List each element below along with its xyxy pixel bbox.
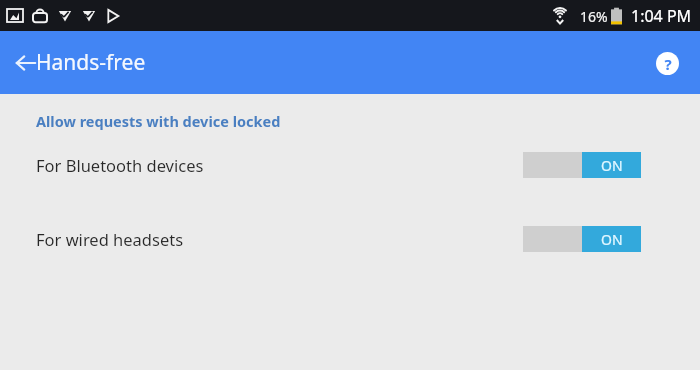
- staticText: ON: [601, 230, 623, 249]
- staticText: Hands-free: [36, 48, 146, 77]
- button[interactable]: For wired headsets: [0, 226, 700, 252]
- staticText: For wired headsets: [36, 228, 184, 250]
- staticText: For Bluetooth devices: [36, 154, 204, 176]
- button[interactable]: Help: [648, 44, 686, 82]
- staticText: ?: [664, 54, 672, 74]
- button[interactable]: For Bluetooth devices: [0, 152, 700, 178]
- staticText: 16%: [580, 7, 608, 26]
- staticText: ON: [601, 156, 623, 175]
- staticText: 1:04 PM: [631, 5, 692, 27]
- button[interactable]: Back: [6, 43, 46, 83]
- staticText: Allow requests with device locked: [36, 111, 281, 131]
